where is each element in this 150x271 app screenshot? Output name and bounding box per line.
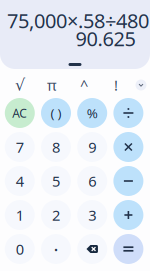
button[interactable]: % xyxy=(77,98,107,128)
staticText: 8 xyxy=(52,137,60,157)
staticText: π xyxy=(47,75,57,95)
button[interactable]: ( ) xyxy=(41,98,71,128)
staticText: 5 xyxy=(52,171,60,191)
staticText: √ xyxy=(15,76,25,94)
button[interactable]: π xyxy=(36,76,68,94)
staticText: 75,000×.58÷480 xyxy=(7,7,149,34)
button[interactable]: 5 xyxy=(41,166,71,196)
button[interactable]: 3 xyxy=(77,200,107,230)
staticText: 4 xyxy=(16,171,24,191)
button[interactable]: 9 xyxy=(77,132,107,162)
button[interactable]: Delete xyxy=(77,234,107,264)
staticText: · xyxy=(53,237,58,261)
button[interactable]: ^ xyxy=(68,76,100,94)
staticText: 90.625 xyxy=(75,25,135,52)
button[interactable]: 7 xyxy=(5,132,35,162)
button[interactable]: 6 xyxy=(77,166,107,196)
button[interactable]: Minus xyxy=(113,166,143,196)
button[interactable]: 2 xyxy=(41,200,71,230)
staticText: ! xyxy=(114,75,118,95)
staticText: AC xyxy=(12,105,27,121)
button[interactable]: Divide xyxy=(113,98,143,128)
button[interactable]: Plus xyxy=(113,200,143,230)
button[interactable]: 1 xyxy=(5,200,35,230)
button[interactable]: 0 xyxy=(5,234,35,264)
button[interactable]: Multiply xyxy=(113,132,143,162)
button[interactable]: More functions xyxy=(132,76,150,94)
staticText: 9 xyxy=(88,137,96,157)
button[interactable]: Equals xyxy=(113,234,143,264)
staticText: 6 xyxy=(88,171,96,191)
staticText: ^ xyxy=(80,75,88,95)
button[interactable]: 8 xyxy=(41,132,71,162)
staticText: 7 xyxy=(16,137,24,157)
button[interactable]: 4 xyxy=(5,166,35,196)
staticText: 3 xyxy=(88,205,96,225)
staticText: 2 xyxy=(52,205,60,225)
staticText: ( ) xyxy=(50,104,61,122)
staticText: % xyxy=(87,104,98,122)
button[interactable]: ! xyxy=(100,76,132,94)
staticText: 0 xyxy=(16,239,24,259)
button[interactable]: · xyxy=(41,234,71,264)
staticText: 1 xyxy=(16,205,24,225)
button[interactable]: √ xyxy=(4,76,36,94)
button[interactable]: AC xyxy=(5,98,35,128)
